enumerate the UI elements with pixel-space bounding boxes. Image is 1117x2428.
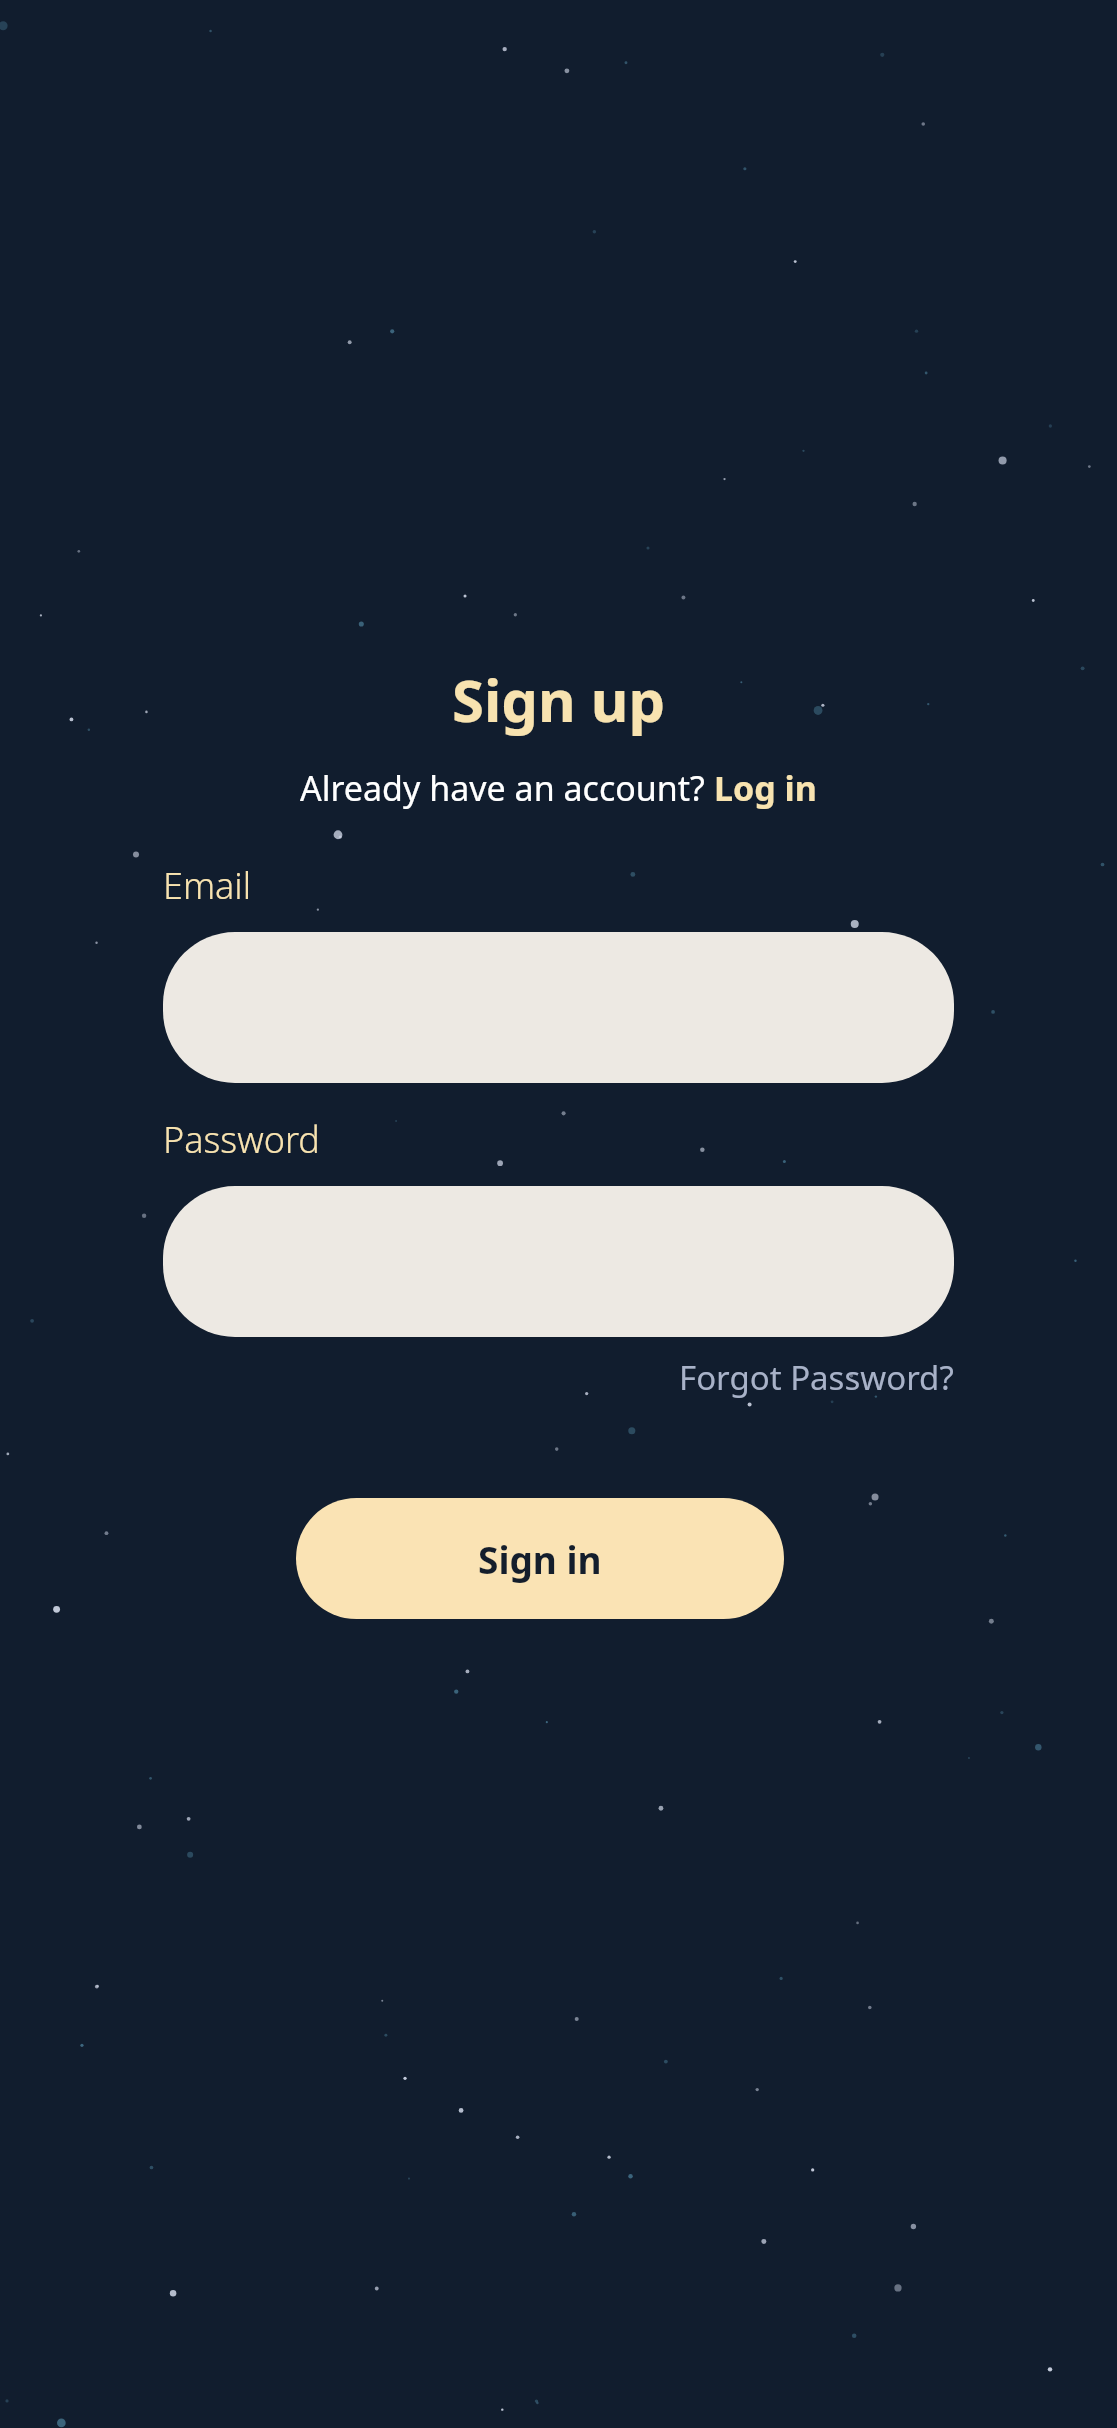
staticText: Log in — [714, 765, 817, 811]
button[interactable]: Password input — [163, 1186, 954, 1337]
staticText: Sign in — [478, 1534, 602, 1584]
button[interactable]: Forgot Password? — [679, 1355, 954, 1400]
staticText: Email — [163, 861, 252, 910]
staticText: Password — [163, 1115, 320, 1164]
staticText: Forgot Password? — [679, 1355, 954, 1400]
button[interactable]: Log in — [714, 765, 817, 811]
staticText: Sign up — [452, 660, 666, 739]
button[interactable]: Sign in — [296, 1498, 784, 1619]
staticText: Already have an account? — [300, 765, 714, 811]
button[interactable]: Email input — [163, 932, 954, 1083]
